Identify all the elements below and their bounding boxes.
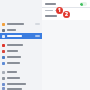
button[interactable]: Step 1 bbox=[56, 7, 63, 14]
button[interactable] bbox=[0, 54, 42, 60]
button[interactable] bbox=[0, 48, 42, 54]
button[interactable] bbox=[0, 21, 42, 27]
button[interactable] bbox=[0, 27, 42, 33]
button[interactable] bbox=[0, 42, 42, 48]
staticText: 1 bbox=[58, 7, 61, 14]
button[interactable] bbox=[0, 87, 42, 90]
button[interactable] bbox=[0, 75, 42, 81]
button[interactable]: Toggle bbox=[80, 2, 87, 6]
button[interactable] bbox=[0, 69, 42, 75]
button[interactable] bbox=[59, 14, 88, 19]
button[interactable]: Step 2 bbox=[63, 11, 70, 18]
button[interactable] bbox=[0, 81, 42, 87]
button[interactable] bbox=[0, 60, 42, 66]
button[interactable] bbox=[0, 33, 42, 39]
staticText: 2 bbox=[65, 11, 68, 18]
